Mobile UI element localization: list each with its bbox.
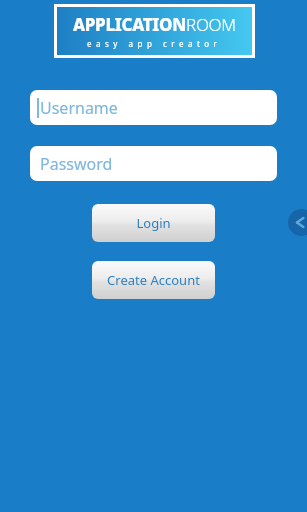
staticText: ROOM: [186, 13, 236, 36]
button[interactable]: Password: [30, 146, 277, 181]
button[interactable]: Open side panel: [288, 209, 307, 236]
staticText: Login: [136, 214, 171, 232]
staticText: APPLICATION: [73, 13, 186, 36]
staticText: Password: [40, 153, 113, 175]
button[interactable]: Login: [92, 204, 215, 242]
staticText: easy app creator: [87, 38, 222, 49]
button[interactable]: Username: [30, 90, 277, 125]
staticText: Username: [40, 97, 118, 119]
button[interactable]: Create Account: [92, 261, 215, 299]
staticText: Create Account: [107, 271, 200, 289]
